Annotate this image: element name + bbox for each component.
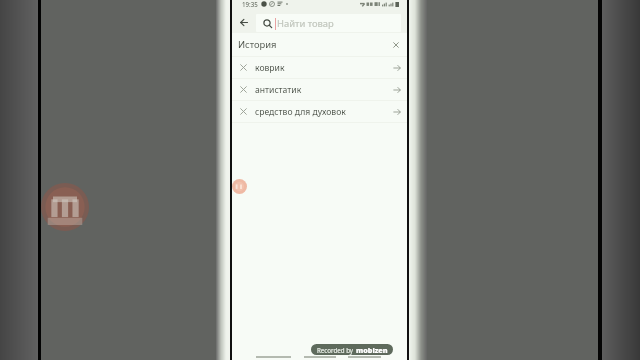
staticText: коврик xyxy=(255,62,285,74)
button[interactable]: антистатик xyxy=(231,79,408,100)
staticText: антистатик xyxy=(255,84,302,96)
button[interactable]: коврик xyxy=(231,57,408,78)
button[interactable]: средство для духовок xyxy=(231,101,408,122)
button[interactable]: Найти товар xyxy=(256,14,401,32)
button[interactable]: Навигация xyxy=(343,350,386,359)
button[interactable]: Назад xyxy=(236,14,252,30)
button[interactable]: Навигация xyxy=(251,350,296,359)
staticText: История xyxy=(238,38,277,51)
staticText: Recorded by xyxy=(317,346,354,354)
button[interactable]: Очистить историю xyxy=(388,37,404,53)
button[interactable]: Навигация xyxy=(299,350,341,359)
staticText: mobizen xyxy=(356,345,388,355)
staticText: 19:35 xyxy=(242,0,258,8)
staticText: средство для духовок xyxy=(255,106,346,118)
staticText: Найти товар xyxy=(277,17,334,30)
